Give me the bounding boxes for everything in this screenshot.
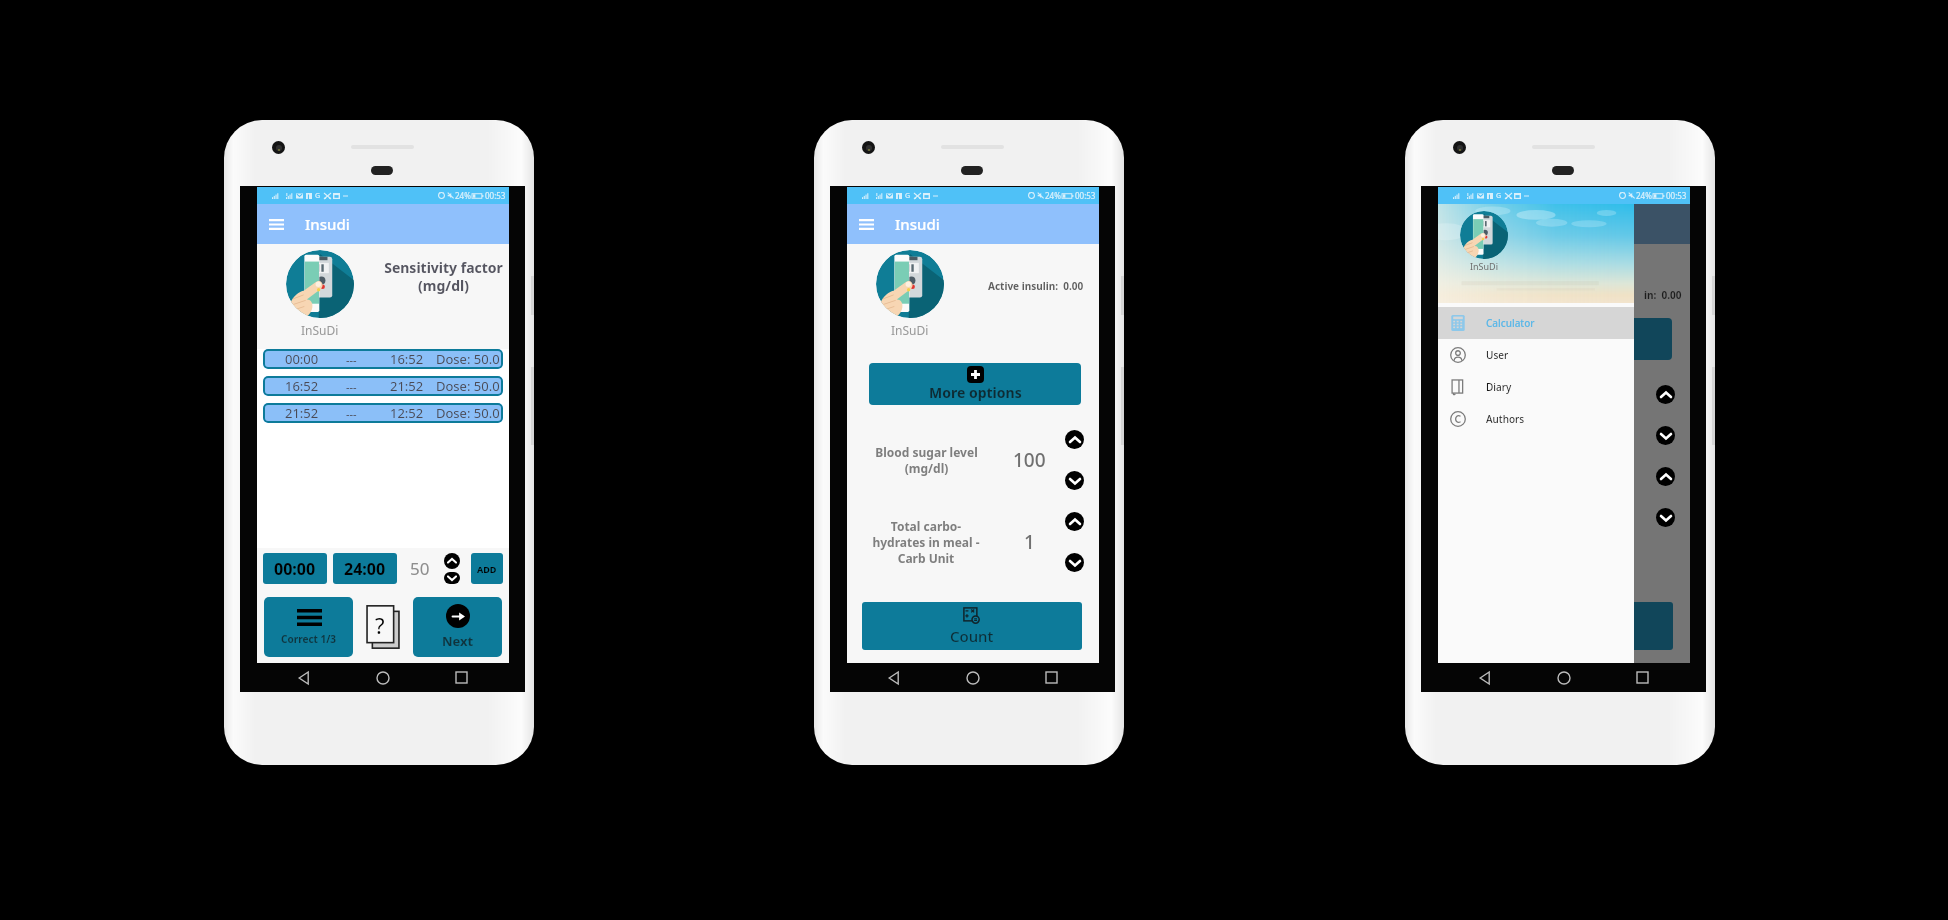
staticText: 00:00: [285, 350, 319, 368]
button[interactable]: Calculator: [1438, 307, 1634, 339]
staticText: G: [905, 191, 911, 201]
button[interactable]: 16:52: [263, 376, 503, 396]
staticText: 24%: [1636, 190, 1652, 201]
staticText: Correct 1/3: [281, 632, 337, 646]
staticText: Calculator: [1486, 316, 1535, 330]
button[interactable]: Authors: [1438, 403, 1634, 435]
button[interactable]: Increase: [1656, 467, 1675, 486]
staticText: Next: [442, 632, 474, 650]
staticText: Total carbo- hydrates in meal - Carb Uni…: [872, 518, 980, 566]
staticText: 12:52: [390, 404, 424, 422]
staticText: Dose: 50.0: [436, 377, 500, 395]
button[interactable]: Recent apps: [1036, 663, 1066, 692]
staticText: 1: [1024, 529, 1035, 555]
button[interactable]: Back: [289, 663, 319, 692]
button[interactable]: Recent apps: [1627, 663, 1657, 692]
staticText: User: [1486, 348, 1509, 362]
button[interactable]: Decrease: [1656, 426, 1675, 445]
staticText: InSuDi: [891, 322, 929, 338]
staticText: Sensitivity factor (mg/dl): [384, 258, 503, 295]
staticText: G: [1496, 191, 1502, 201]
button[interactable]: Open navigation menu: [854, 212, 878, 236]
button[interactable]: Correct 1/3: [264, 597, 353, 657]
button[interactable]: Decrease: [1656, 508, 1675, 527]
button[interactable]: More options: [869, 363, 1081, 405]
staticText: Active insulin: 0.00: [988, 279, 1084, 293]
staticText: 16:52: [285, 377, 319, 395]
staticText: 24:00: [344, 558, 386, 580]
button[interactable]: Recent apps: [446, 663, 476, 692]
staticText: Dose: 50.0: [436, 404, 500, 422]
staticText: Insudi: [895, 214, 940, 234]
button[interactable]: Increase: [444, 553, 460, 569]
staticText: Authors: [1486, 412, 1525, 426]
staticText: More options: [929, 383, 1022, 402]
button[interactable]: ADD: [471, 553, 503, 584]
staticText: 21:52: [390, 377, 424, 395]
staticText: 00:53: [485, 190, 506, 201]
staticText: 16:52: [390, 350, 424, 368]
button[interactable]: Increase: [1656, 385, 1675, 404]
button[interactable]: 24:00: [333, 553, 397, 584]
staticText: 00:00: [274, 558, 316, 580]
button[interactable]: Increase: [1065, 512, 1084, 531]
staticText: ---: [346, 379, 357, 394]
staticText: Dose: 50.0: [436, 350, 500, 368]
staticText: InSuDi: [301, 322, 339, 338]
button[interactable]: Diary: [1438, 371, 1634, 403]
button[interactable]: Back: [879, 663, 909, 692]
staticText: ---: [346, 352, 357, 367]
staticText: ADD: [477, 563, 497, 575]
staticText: Blood sugar level (mg/dl): [875, 444, 978, 476]
staticText: 21:52: [285, 404, 319, 422]
button[interactable]: Home: [368, 663, 398, 692]
button[interactable]: Open navigation menu: [264, 212, 288, 236]
staticText: 24%: [1045, 190, 1061, 201]
staticText: Diary: [1486, 380, 1512, 394]
button[interactable]: Increase: [1065, 430, 1084, 449]
button[interactable]: Back: [1470, 663, 1500, 692]
staticText: in: 0.00: [1644, 288, 1682, 302]
staticText: InSuDi: [1470, 260, 1499, 272]
staticText: G: [1496, 191, 1502, 201]
button[interactable]: Home: [1549, 663, 1579, 692]
button[interactable]: Decrease: [1065, 553, 1084, 572]
staticText: 24%: [455, 190, 471, 201]
button[interactable]: Next: [413, 597, 502, 657]
staticText: 00:53: [1666, 190, 1687, 201]
button[interactable]: 00:00: [263, 553, 327, 584]
staticText: 00:53: [1666, 190, 1687, 201]
button[interactable]: Decrease: [1065, 471, 1084, 490]
staticText: G: [315, 191, 321, 201]
button[interactable]: 00:00: [263, 349, 503, 369]
staticText: Insudi: [305, 214, 350, 234]
staticText: Count: [950, 626, 994, 646]
staticText: 100: [1013, 447, 1046, 473]
button[interactable]: Decrease: [444, 572, 460, 584]
button[interactable]: User: [1438, 339, 1634, 371]
button[interactable]: Help: [364, 604, 402, 650]
staticText: 50: [410, 557, 430, 580]
staticText: 24%: [1636, 190, 1652, 201]
button[interactable]: Home: [958, 663, 988, 692]
staticText: ---: [346, 406, 357, 421]
staticText: 00:53: [1075, 190, 1096, 201]
button[interactable]: Count: [862, 602, 1082, 650]
staticText: ?: [375, 610, 385, 640]
button[interactable]: 21:52: [263, 403, 503, 423]
